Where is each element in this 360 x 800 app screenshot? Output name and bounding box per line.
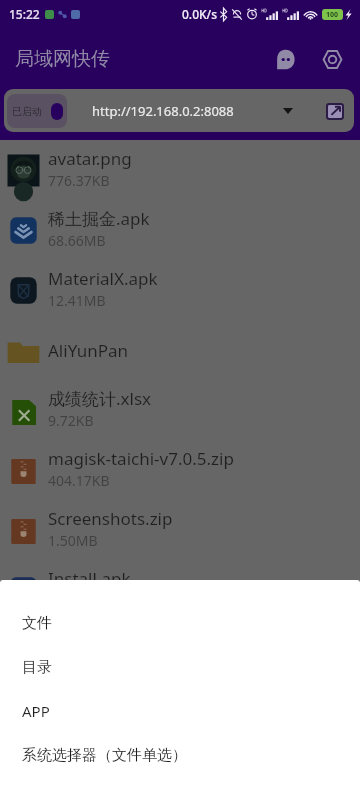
staticText: 9.72KB [48,411,94,430]
staticText: APP [22,701,50,721]
staticText: 12.41MB [48,291,106,310]
button[interactable]: 系统选择器（文件单选） [0,733,360,777]
button[interactable]: 稀土掘金.apk [0,200,360,260]
staticText: 成绩统计.xlsx [48,387,152,410]
button[interactable]: MaterialX.apk [0,260,360,320]
button[interactable]: AliYunPan [0,320,360,380]
staticText: 776.37KB [48,171,110,190]
button[interactable]: Screenshots.zip [0,500,360,560]
staticText: 已启动 [12,105,42,118]
button[interactable]: Settings [312,39,352,79]
button[interactable]: 已启动 [7,94,67,128]
staticText: http://192.168.0.2:8088 [92,102,234,120]
staticText: 文件 [22,614,52,633]
staticText: MaterialX.apk [48,267,158,290]
staticText: 0.0K/s [182,6,218,22]
staticText: Install.apk [48,567,131,590]
staticText: 404.17KB [48,471,110,490]
staticText: 系统选择器（文件单选） [22,746,187,765]
button[interactable]: 文件 [0,601,360,645]
staticText: Screenshots.zip [48,507,173,530]
button[interactable]: APP [0,689,360,733]
button[interactable]: magisk-taichi-v7.0.5.zip [0,440,360,500]
staticText: magisk-taichi-v7.0.5.zip [48,447,234,470]
button[interactable]: avatar.png [0,140,360,200]
staticText: 15:22 [9,6,40,22]
button[interactable]: 成绩统计.xlsx [0,380,360,440]
staticText: 局域网快传 [15,47,110,71]
staticText: 68.66MB [48,231,106,250]
button[interactable]: Open in browser [323,99,347,123]
staticText: 稀土掘金.apk [48,207,150,230]
staticText: 100 [326,10,339,20]
staticText: 1.50MB [48,531,98,550]
staticText: avatar.png [48,147,132,170]
staticText: 目录 [22,658,52,677]
button[interactable]: Messages [265,39,305,79]
button[interactable]: 目录 [0,645,360,689]
button[interactable]: Install.apk [0,560,360,620]
staticText: AliYunPan [48,339,129,362]
